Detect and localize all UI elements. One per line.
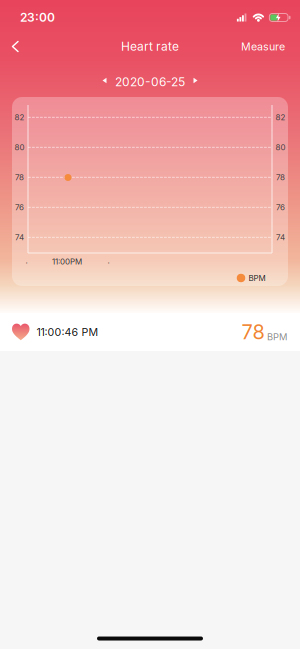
staticText: 80	[14, 143, 24, 152]
button[interactable]: Measure	[241, 34, 285, 59]
button[interactable]: Back	[0, 35, 28, 57]
staticText: Measure	[241, 40, 285, 53]
staticText: .	[25, 256, 27, 265]
staticText: 78	[15, 173, 24, 182]
button[interactable]: Next day	[190, 76, 201, 88]
button[interactable]: 11:00:46 PM	[0, 313, 300, 351]
staticText: 11:00:46 PM	[36, 326, 98, 338]
staticText: 78	[241, 320, 264, 344]
staticText: 76	[276, 203, 285, 212]
button[interactable]: Previous day	[99, 76, 110, 88]
staticText: Heart rate	[121, 39, 179, 54]
staticText: 23:00	[20, 10, 55, 25]
staticText: 82	[275, 113, 285, 122]
staticText: 2020-06-25	[115, 75, 185, 89]
staticText: 76	[15, 203, 24, 212]
staticText: 80	[275, 143, 285, 152]
staticText: 78	[276, 173, 285, 182]
staticText: BPM	[248, 273, 265, 283]
staticText: 74	[15, 233, 24, 242]
staticText: BPM	[267, 331, 287, 342]
staticText: 82	[14, 113, 24, 122]
staticText: 74	[276, 233, 285, 242]
staticText: .	[107, 256, 109, 265]
staticText: 11:00PM	[52, 257, 82, 266]
